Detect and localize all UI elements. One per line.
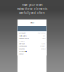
staticText: Light xyxy=(42,38,45,39)
button[interactable]: Storage xyxy=(17,42,46,45)
staticText: English xyxy=(40,45,45,47)
staticText: Privacy xyxy=(19,40,25,42)
staticText: carefully and often xyxy=(19,11,45,15)
staticText: Account xyxy=(19,32,25,34)
staticText: review these elements xyxy=(17,7,47,11)
staticText: About xyxy=(19,53,23,55)
button[interactable]: About xyxy=(17,53,46,55)
staticText: Appearance xyxy=(19,38,29,39)
staticText: Sounds xyxy=(19,48,25,50)
button[interactable]: Accessibility xyxy=(17,50,46,53)
staticText: On xyxy=(43,35,45,37)
staticText: Have your team xyxy=(22,3,42,7)
button[interactable]: Privacy xyxy=(17,40,46,42)
staticText: Accessibility xyxy=(19,51,27,52)
button[interactable]: Appearance xyxy=(17,37,46,40)
button[interactable]: Account xyxy=(17,32,46,35)
button[interactable]: Sounds xyxy=(17,48,46,50)
staticText: Notifications xyxy=(19,35,27,37)
staticText: Storage xyxy=(19,43,25,45)
staticText: Default xyxy=(41,48,45,50)
staticText: Language xyxy=(19,45,27,47)
staticText: Personal xyxy=(38,32,45,34)
button[interactable]: Language xyxy=(17,45,46,48)
staticText: Settings xyxy=(29,22,34,24)
staticText: 12 GB xyxy=(41,43,45,45)
button[interactable]: Notifications xyxy=(17,35,46,37)
